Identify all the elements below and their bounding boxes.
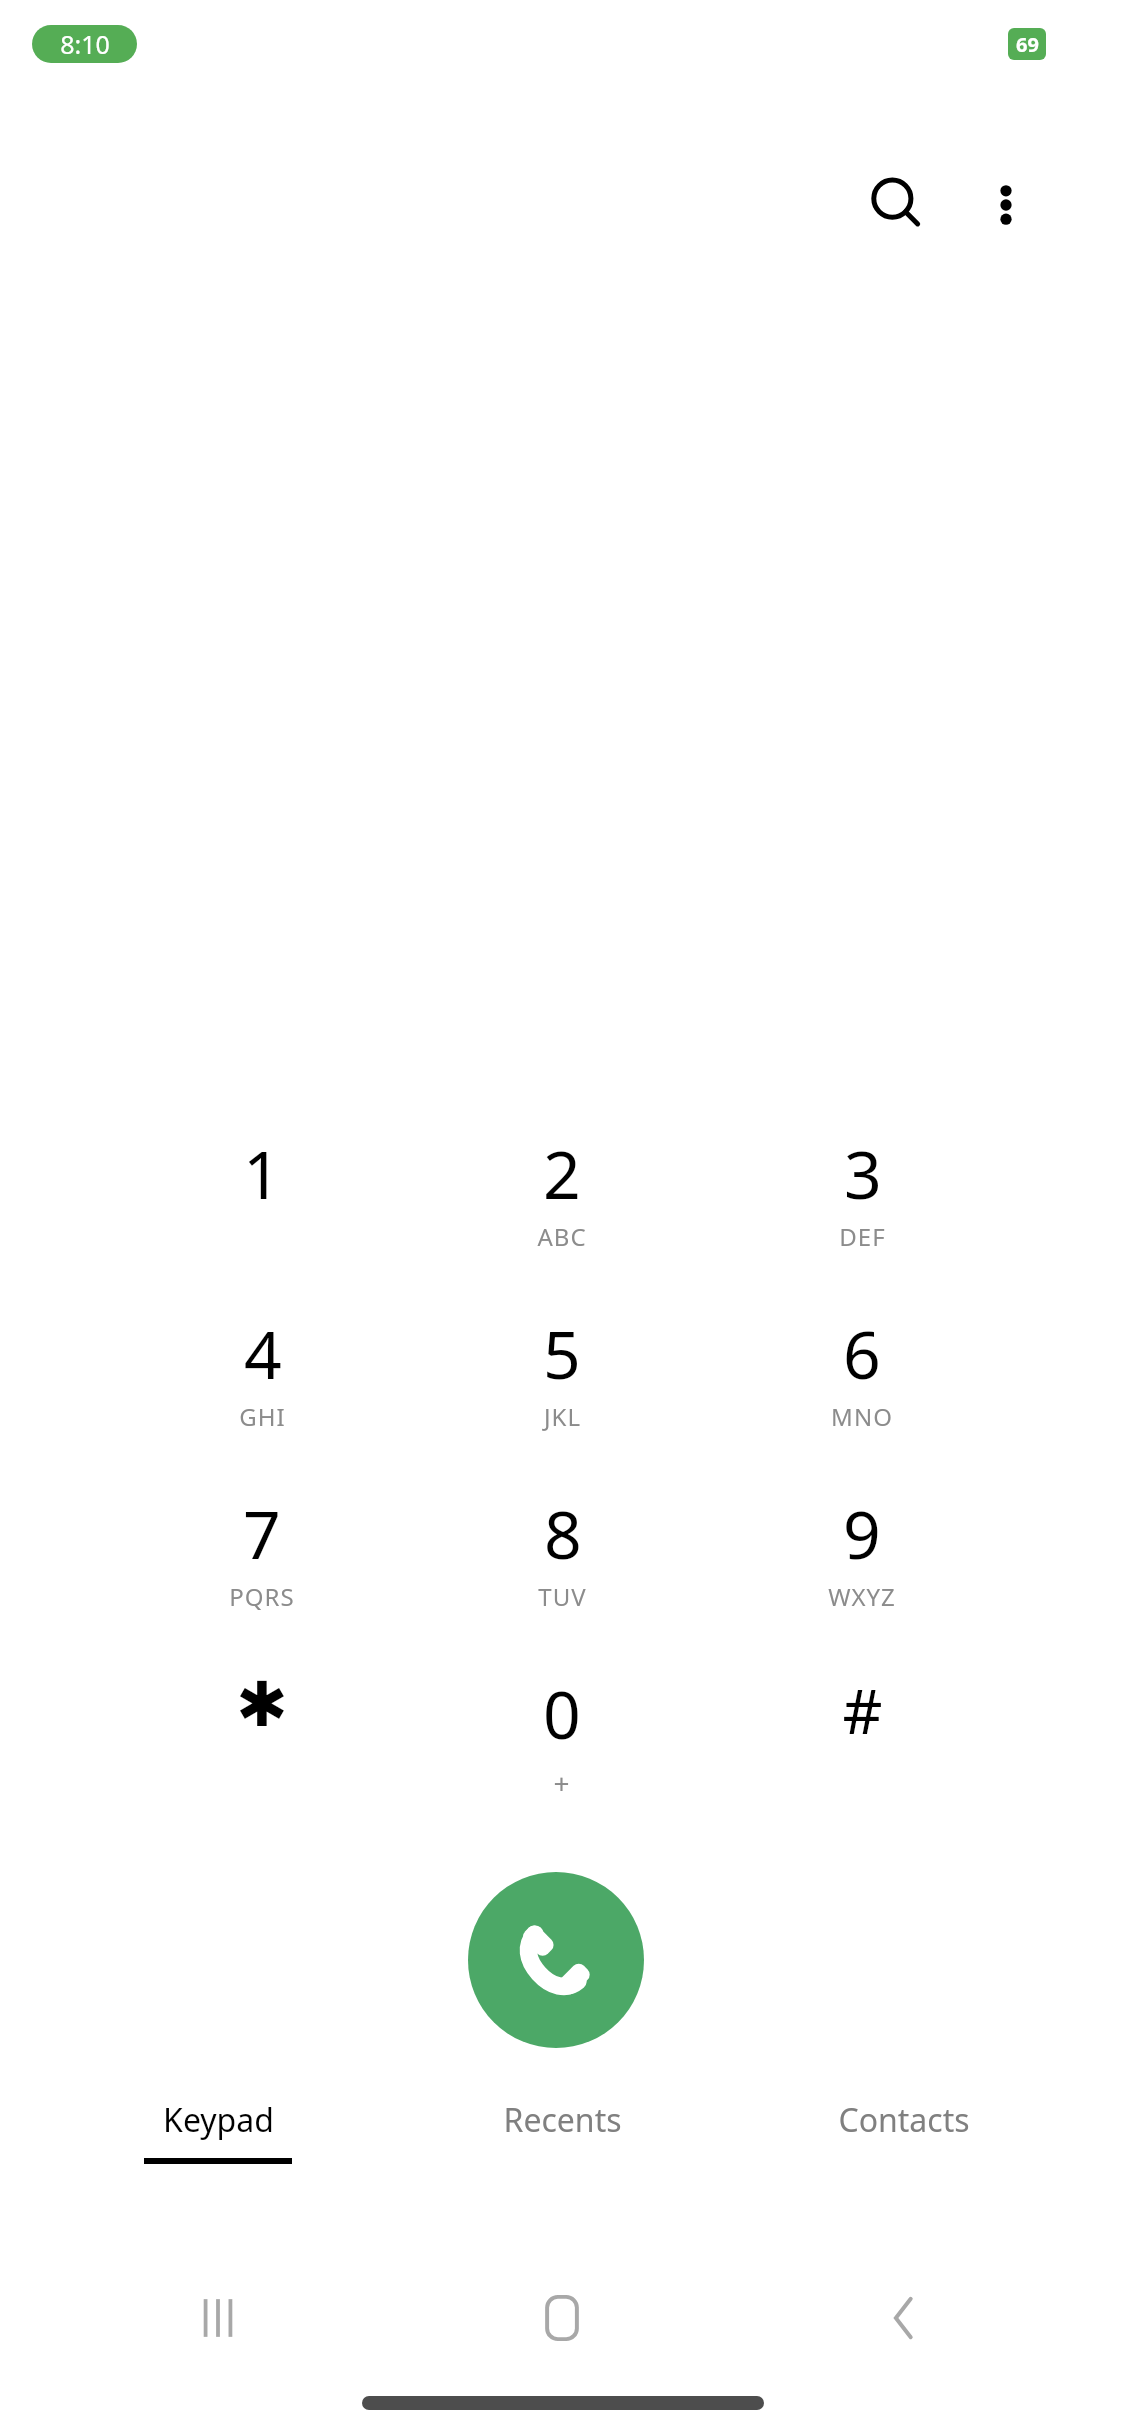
staticText: 8 xyxy=(544,1488,582,1578)
button[interactable]: 7 xyxy=(112,1488,412,1666)
button[interactable]: ✱ xyxy=(112,1668,412,1846)
button[interactable]: Contacts xyxy=(734,2098,1074,2213)
staticText: PQRS xyxy=(229,1580,295,1613)
button[interactable]: 3 xyxy=(712,1128,1012,1306)
button[interactable]: More options xyxy=(954,153,1058,257)
button[interactable]: 6 xyxy=(712,1308,1012,1486)
staticText: Recents xyxy=(503,2098,622,2142)
button[interactable]: Keypad xyxy=(48,2098,388,2213)
staticText: WXYZ xyxy=(828,1580,896,1613)
staticText: MNO xyxy=(831,1400,893,1433)
staticText: DEF xyxy=(839,1220,886,1253)
staticText: 9 xyxy=(843,1488,881,1578)
staticText: 8:10 xyxy=(60,27,110,61)
staticText: Keypad xyxy=(163,2098,274,2142)
staticText: 3 xyxy=(844,1128,882,1218)
staticText: 0 xyxy=(543,1668,581,1758)
staticText: ✱ xyxy=(236,1668,288,1740)
button[interactable]: 2 xyxy=(412,1128,712,1306)
staticText: 1 xyxy=(243,1128,281,1218)
button[interactable]: 5 xyxy=(412,1308,712,1486)
button[interactable]: 1 xyxy=(112,1128,412,1306)
staticText: 2 xyxy=(543,1128,581,1218)
staticText: Contacts xyxy=(838,2098,970,2142)
button[interactable]: 8 xyxy=(412,1488,712,1666)
staticText: TUV xyxy=(538,1580,587,1613)
staticText: GHI xyxy=(239,1400,286,1433)
staticText: + xyxy=(553,1764,571,1802)
staticText: # xyxy=(842,1668,883,1752)
button[interactable]: Home xyxy=(472,2258,652,2378)
button[interactable]: Recents xyxy=(392,2098,732,2213)
staticText: 69 xyxy=(1016,31,1039,58)
staticText: 6 xyxy=(843,1308,881,1398)
staticText: JKL xyxy=(544,1400,581,1433)
button[interactable]: Search xyxy=(845,153,949,257)
staticText: 4 xyxy=(244,1308,282,1398)
staticText: 7 xyxy=(243,1488,281,1578)
button[interactable]: # xyxy=(712,1668,1012,1846)
button[interactable]: 0 xyxy=(412,1668,712,1846)
button[interactable]: 9 xyxy=(712,1488,1012,1666)
button[interactable]: Back xyxy=(814,2258,994,2378)
button[interactable]: Recents xyxy=(128,2258,308,2378)
button[interactable]: Call xyxy=(468,1872,644,2048)
button[interactable]: 4 xyxy=(112,1308,412,1486)
staticText: ABC xyxy=(537,1220,587,1253)
staticText: 5 xyxy=(543,1308,581,1398)
